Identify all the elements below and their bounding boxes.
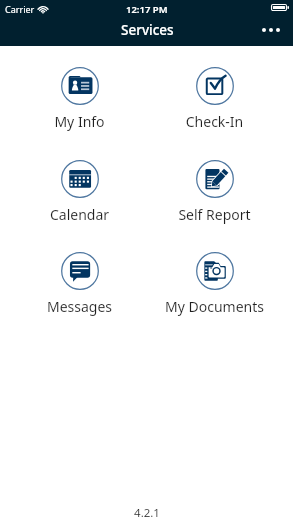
button[interactable]: Calendar [12, 156, 147, 224]
button[interactable]: More options [255, 18, 287, 42]
staticText: Calendar [12, 205, 147, 224]
button[interactable]: My Documents [147, 248, 282, 316]
staticText: Services [121, 21, 174, 39]
staticText: My Documents [147, 297, 282, 316]
staticText: 12:17 PM [126, 3, 168, 16]
button[interactable]: My Info [12, 63, 147, 131]
button[interactable]: Check-In [147, 63, 282, 131]
button[interactable]: Messages [12, 248, 147, 316]
staticText: Self Report [147, 205, 282, 224]
staticText: 4.2.1 [134, 505, 160, 520]
staticText: Carrier [5, 3, 35, 15]
staticText: Check-In [147, 112, 282, 131]
button[interactable]: Self Report [147, 156, 282, 224]
staticText: My Info [12, 112, 147, 131]
staticText: Messages [12, 297, 147, 316]
